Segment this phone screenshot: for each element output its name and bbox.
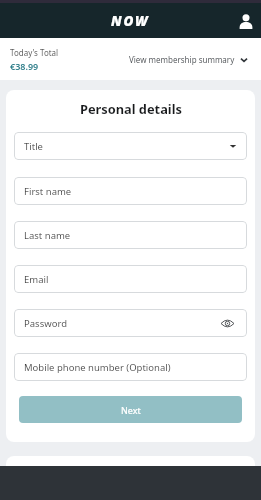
staticText: Next <box>121 404 141 416</box>
button[interactable]: First name <box>14 177 247 205</box>
staticText: Mobile phone number (Optional) <box>24 361 171 374</box>
button[interactable]: Email <box>14 265 247 293</box>
button[interactable]: Next <box>19 396 242 423</box>
staticText: Password <box>24 317 67 330</box>
staticText: Personal details <box>80 100 182 117</box>
button[interactable]: View membership summary <box>129 54 248 65</box>
staticText: €38.99 <box>10 60 39 72</box>
button[interactable]: Mobile phone number (Optional) <box>14 353 247 381</box>
staticText: Today's Total <box>10 47 59 58</box>
staticText: NOW <box>111 12 150 30</box>
button[interactable]: Password <box>14 309 247 337</box>
staticText: View membership summary <box>129 54 235 65</box>
staticText: First name <box>24 185 72 198</box>
button[interactable]: Title <box>14 132 247 160</box>
button[interactable]: Last name <box>14 221 247 249</box>
button[interactable] <box>236 11 256 31</box>
staticText: Email <box>24 273 49 286</box>
staticText: Title <box>24 140 43 153</box>
staticText: Last name <box>24 229 71 242</box>
